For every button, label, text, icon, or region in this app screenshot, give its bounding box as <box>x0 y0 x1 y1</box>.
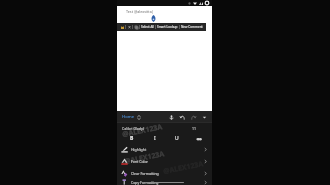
button[interactable]: Dictate <box>167 113 175 121</box>
button[interactable]: Cut <box>127 25 131 29</box>
button[interactable]: Home <box>122 114 141 120</box>
button[interactable]: 11 <box>192 126 197 131</box>
button[interactable]: New Comment <box>181 25 203 29</box>
staticText: U <box>175 135 179 142</box>
button[interactable]: Highlight <box>117 143 212 155</box>
button[interactable]: Redo <box>189 113 197 121</box>
button[interactable]: Calibri (Body) <box>122 126 144 131</box>
staticText: I <box>154 135 156 142</box>
staticText: @ALEX123A <box>121 122 164 140</box>
button[interactable]: Copy <box>134 25 138 29</box>
button[interactable]: Paste <box>120 25 124 29</box>
button[interactable]: Undo <box>178 113 186 121</box>
staticText: B <box>130 135 134 142</box>
staticText: Font Color <box>131 159 149 164</box>
button[interactable]: Collapse ribbon <box>200 113 208 121</box>
button[interactable]: Strikethrough <box>194 134 203 143</box>
button[interactable]: Clear Formatting <box>117 167 212 179</box>
other: Text cursor handle <box>151 15 156 22</box>
staticText: @ALEX123A <box>162 159 205 177</box>
button[interactable]: Smart Lookup <box>157 25 178 29</box>
button[interactable]: Underline <box>172 134 181 143</box>
button[interactable]: Font Color <box>117 155 212 167</box>
staticText: Clear Formatting <box>131 171 159 176</box>
button[interactable]: Select All <box>141 25 154 29</box>
button[interactable]: Italic <box>150 134 159 143</box>
staticText: @ALEX123A <box>123 149 166 167</box>
button[interactable]: Bold <box>127 134 136 143</box>
button[interactable]: Copy Formatting <box>117 179 212 185</box>
staticText: Highlight <box>131 147 147 152</box>
staticText: Home <box>122 114 135 120</box>
staticText: Test @alexvitta| <box>126 9 154 14</box>
staticText: Copy Formatting <box>131 180 159 185</box>
